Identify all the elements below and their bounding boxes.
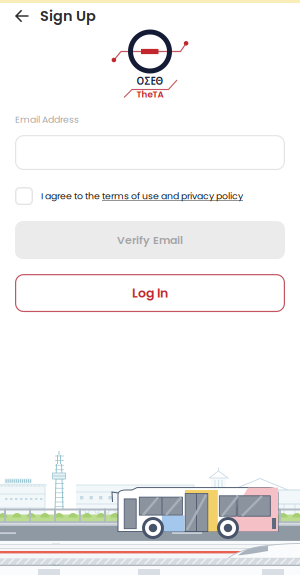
staticText: I agree to the terms of use and privacy … (41, 189, 243, 203)
button[interactable]: Verify Email (15, 221, 285, 259)
button[interactable]: I agree to the terms of use and privacy … (33, 189, 243, 203)
staticText: Sign Up (40, 6, 96, 26)
staticText: Verify Email (117, 232, 183, 248)
button[interactable]: Agree to terms (15, 187, 33, 205)
staticText: ΟΣΕΘ (136, 74, 163, 88)
staticText: Email Address (15, 113, 79, 126)
staticText: TheTA (136, 88, 163, 101)
button[interactable]: Back (8, 3, 36, 29)
button[interactable]: Log In (15, 274, 285, 312)
staticText: Log In (132, 284, 168, 302)
